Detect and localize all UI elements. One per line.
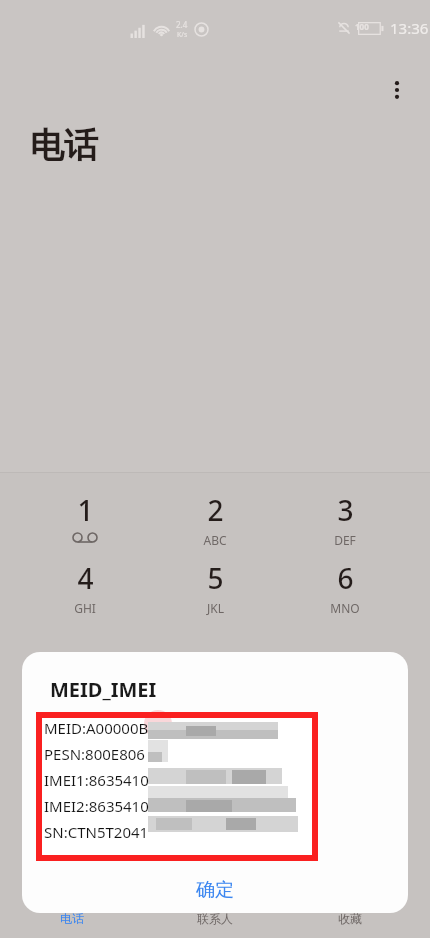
staticText: ABC (203, 532, 227, 548)
staticText: K/s (177, 30, 188, 40)
staticText: MNO (330, 600, 360, 616)
button[interactable]: 收藏 (305, 902, 395, 934)
staticText: IMEI2:8635410 (44, 796, 149, 822)
staticText: 5 (207, 559, 224, 597)
button[interactable]: 确定 (22, 866, 408, 913)
staticText: 收藏 (338, 911, 362, 926)
staticText: 6 (337, 559, 354, 597)
staticText: GHI (74, 600, 96, 616)
button[interactable]: 5 (167, 559, 263, 623)
staticText: 100 (355, 21, 369, 32)
staticText: JKL (207, 600, 224, 616)
staticText: 2 (207, 491, 224, 529)
staticText: 13:36 (390, 18, 429, 38)
staticText: 联系人 (197, 911, 233, 926)
button[interactable]: 3 (297, 491, 393, 555)
button[interactable]: 联系人 (170, 902, 260, 934)
button[interactable]: 6 (297, 559, 393, 623)
staticText: MEID:A00000B (44, 718, 149, 744)
staticText: 确定 (196, 878, 234, 902)
button[interactable]: 4 (37, 559, 133, 623)
staticText: SN:CTN5T2041 (44, 822, 149, 848)
staticText: IMEI1:8635410 (44, 770, 149, 796)
staticText: MEID_IMEI (50, 676, 157, 703)
staticText: 1 (77, 491, 94, 529)
button[interactable]: 电话 (27, 902, 117, 934)
staticText: PESN:800E806 (44, 744, 145, 770)
staticText: 3 (337, 491, 354, 529)
staticText: 电话 (60, 911, 84, 926)
staticText: 电话 (30, 124, 98, 167)
button[interactable]: 2 (167, 491, 263, 555)
button[interactable]: More options (375, 68, 419, 112)
staticText: 4 (77, 559, 94, 597)
staticText: DEF (334, 532, 356, 548)
button[interactable]: 1 (37, 491, 133, 555)
staticText: 2.4 (176, 19, 188, 30)
